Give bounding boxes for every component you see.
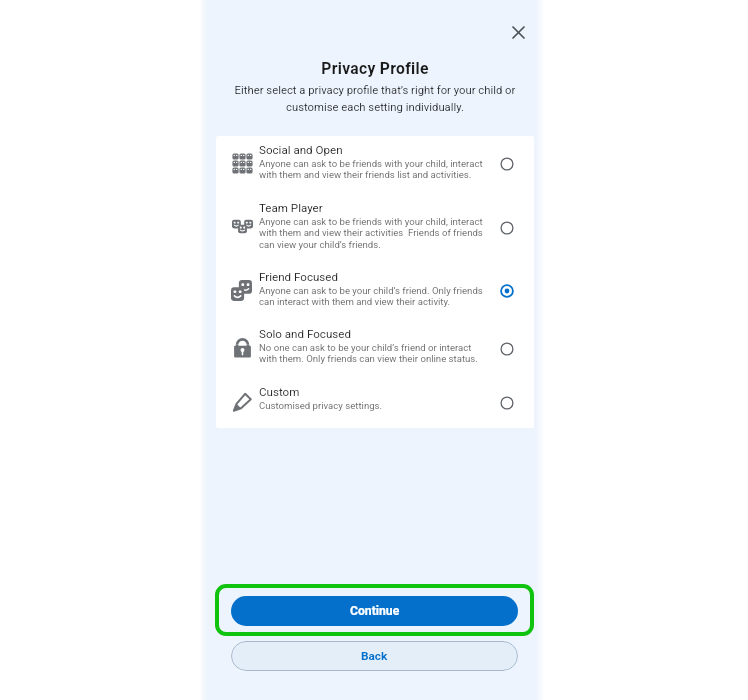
- staticText: No one can ask to be your child’s friend…: [259, 342, 485, 364]
- staticText: Privacy Profile: [203, 59, 547, 77]
- button[interactable]: Select Solo and Focused: [499, 341, 515, 357]
- button[interactable]: Friend Focused: [216, 262, 534, 320]
- staticText: Friend Focused: [259, 270, 485, 284]
- button[interactable]: Select Social and Open: [499, 156, 515, 172]
- button[interactable]: Close: [504, 18, 532, 46]
- button[interactable]: Select Friend Focused: [499, 283, 515, 299]
- button[interactable]: Custom: [216, 377, 534, 423]
- staticText: Continue: [350, 604, 400, 618]
- staticText: Anyone can ask to be friends with your c…: [259, 216, 485, 250]
- staticText: Either select a privacy profile that’s r…: [223, 84, 527, 113]
- staticText: Team Player: [259, 201, 485, 215]
- button[interactable]: Continue: [231, 596, 518, 626]
- button[interactable]: Select Custom: [499, 395, 515, 411]
- staticText: Back: [361, 649, 388, 663]
- button[interactable]: Social and Open: [216, 135, 534, 193]
- button[interactable]: Back: [231, 641, 518, 671]
- staticText: Customised privacy settings.: [259, 400, 485, 411]
- staticText: Social and Open: [259, 143, 485, 157]
- staticText: Anyone can ask to be friends with your c…: [259, 158, 485, 180]
- staticText: Anyone can ask to be your child’s friend…: [259, 285, 485, 307]
- button[interactable]: Select Team Player: [499, 220, 515, 236]
- button[interactable]: Team Player: [216, 193, 534, 262]
- staticText: Custom: [259, 385, 485, 399]
- staticText: Solo and Focused: [259, 327, 485, 341]
- button[interactable]: Solo and Focused: [216, 319, 534, 377]
